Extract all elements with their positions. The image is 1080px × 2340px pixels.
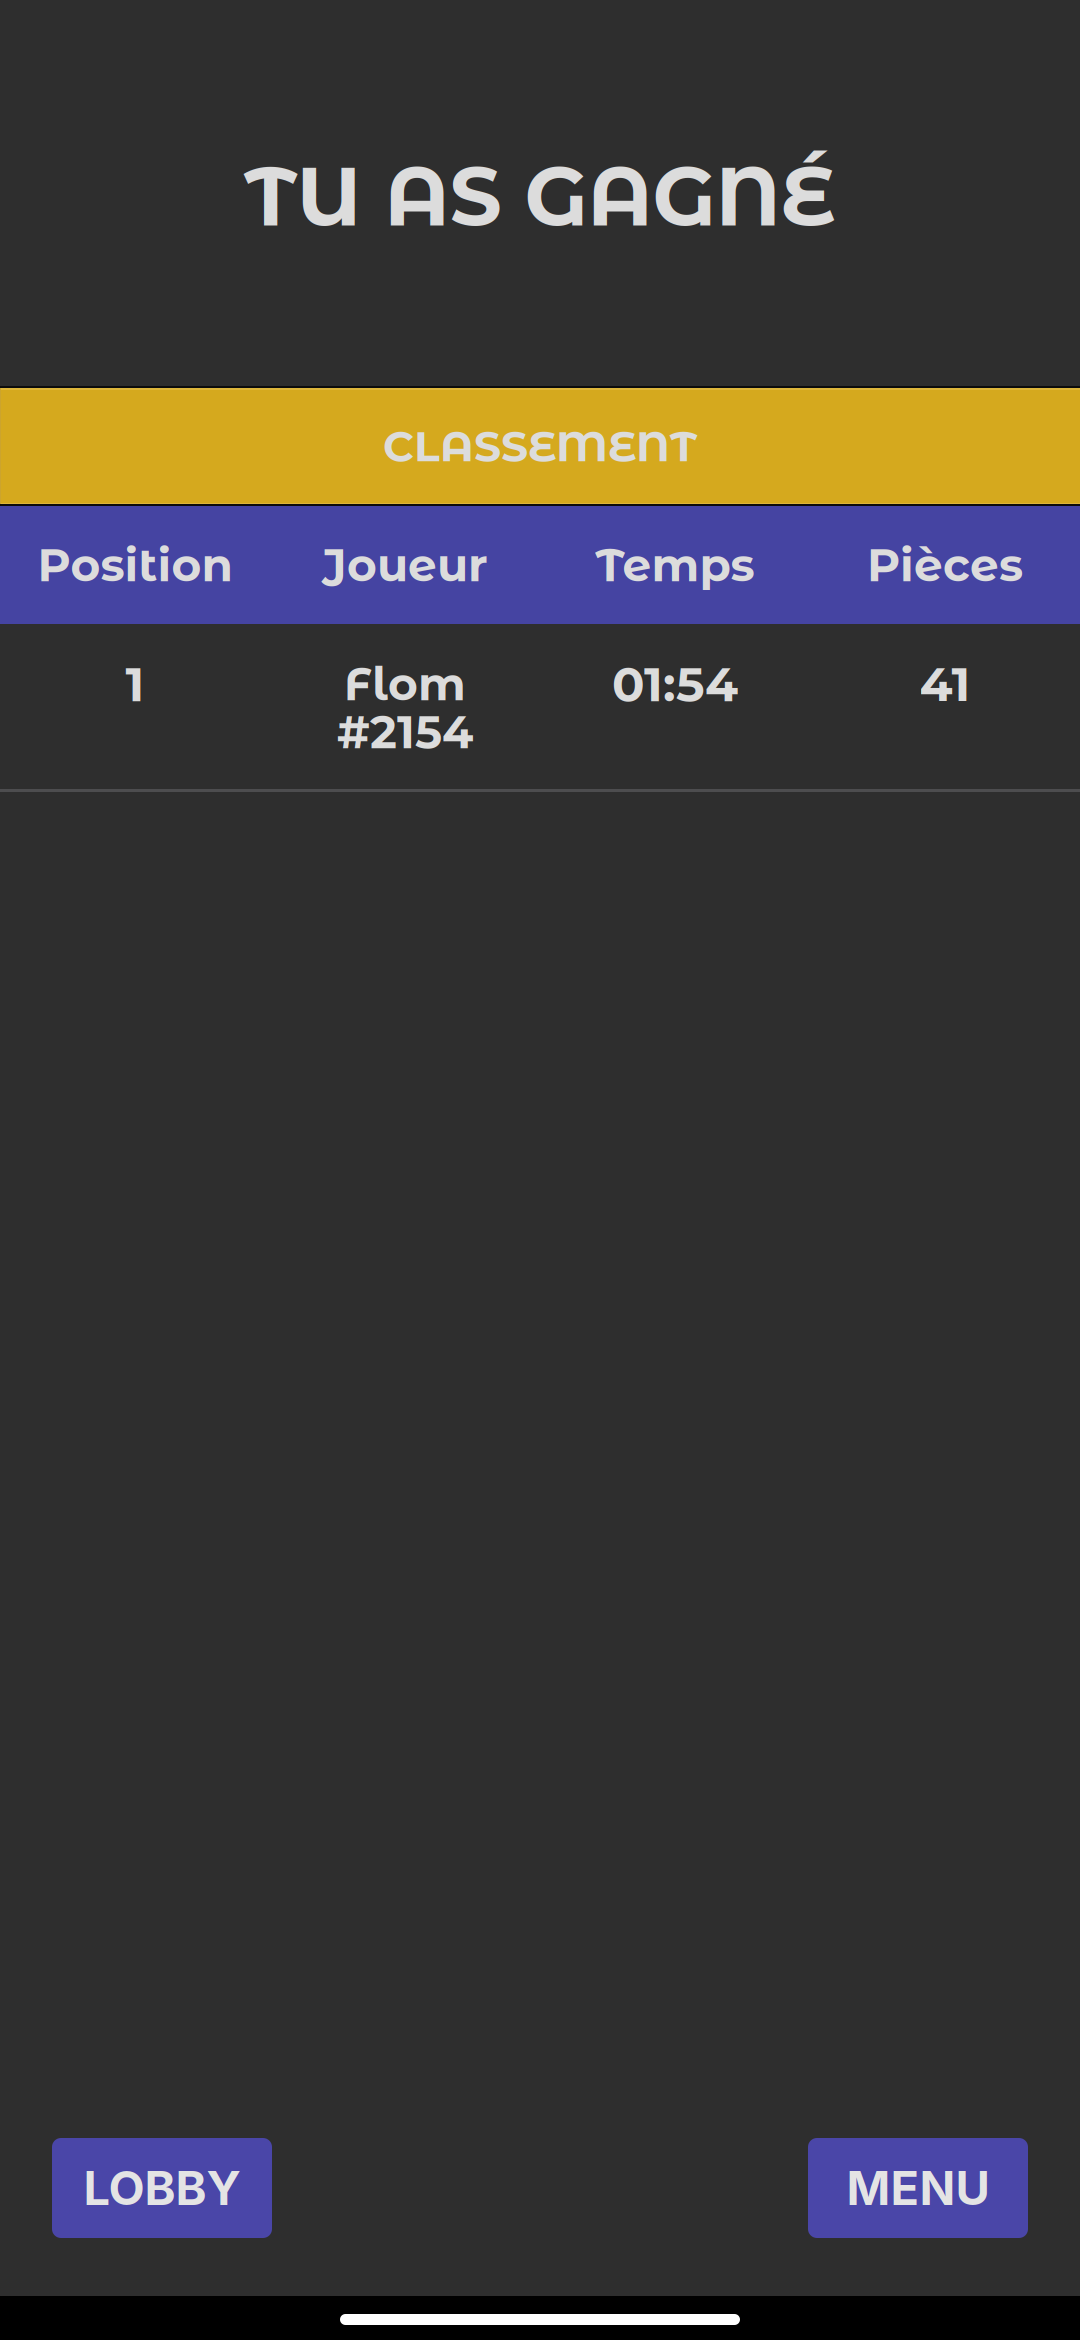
staticText: MENU xyxy=(846,2160,989,2216)
staticText: #2154 xyxy=(337,704,473,760)
staticText: Pièces xyxy=(867,537,1023,593)
staticText: Position xyxy=(37,537,232,593)
staticText: Joueur xyxy=(322,537,488,593)
button[interactable]: LOBBY xyxy=(52,2138,272,2238)
staticText: Flom xyxy=(344,656,466,712)
staticText: 41 xyxy=(919,655,970,713)
staticText: CLASSEMENT xyxy=(383,420,697,472)
staticText: 01:54 xyxy=(612,655,738,713)
button[interactable]: MENU xyxy=(808,2138,1028,2238)
staticText: LOBBY xyxy=(83,2160,240,2216)
staticText: TU AS GAGNÉ xyxy=(244,146,835,246)
staticText: 1 xyxy=(125,655,144,713)
staticText: Temps xyxy=(595,537,754,593)
